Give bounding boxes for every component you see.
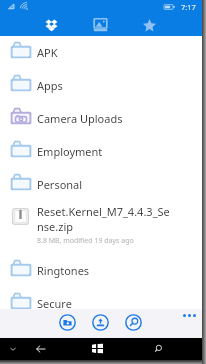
button[interactable]: Personal [0,168,206,201]
button[interactable]: Upload [92,314,109,331]
button[interactable]: Favorites [139,15,160,36]
button[interactable]: Apps [0,69,206,102]
button[interactable]: Camera Uploads [0,102,206,135]
staticText: 8.8 MB, modified 19 days ago [37,236,134,246]
staticText: APK [37,45,58,60]
button[interactable]: Secure [0,287,206,320]
staticText: Ringtones [37,263,90,278]
button[interactable]: Files [41,15,62,36]
button[interactable]: More options [176,309,201,338]
button[interactable]: Reset.Kernel_M7_4.4.3_Sense.zip [0,201,206,254]
button[interactable]: APK [0,36,206,69]
button[interactable]: Hide navigation bar [7,343,19,355]
button[interactable]: Ringtones [0,254,206,287]
button[interactable]: Search [125,314,142,331]
staticText: Camera Uploads [37,111,123,126]
button[interactable]: Search [151,342,165,356]
staticText: Reset.Kernel_M7_4.4.3_Sense.zip [37,204,171,234]
button[interactable]: Photos [90,15,111,36]
staticText: Apps [37,78,63,93]
button[interactable]: New folder [59,314,76,331]
staticText: Personal [37,177,83,192]
button[interactable]: Employment [0,135,206,168]
staticText: Secure [37,296,72,311]
staticText: Employment [37,144,103,159]
staticText: 7:17 [181,2,196,12]
button[interactable]: Start [92,343,103,354]
button[interactable]: Back [34,342,48,356]
